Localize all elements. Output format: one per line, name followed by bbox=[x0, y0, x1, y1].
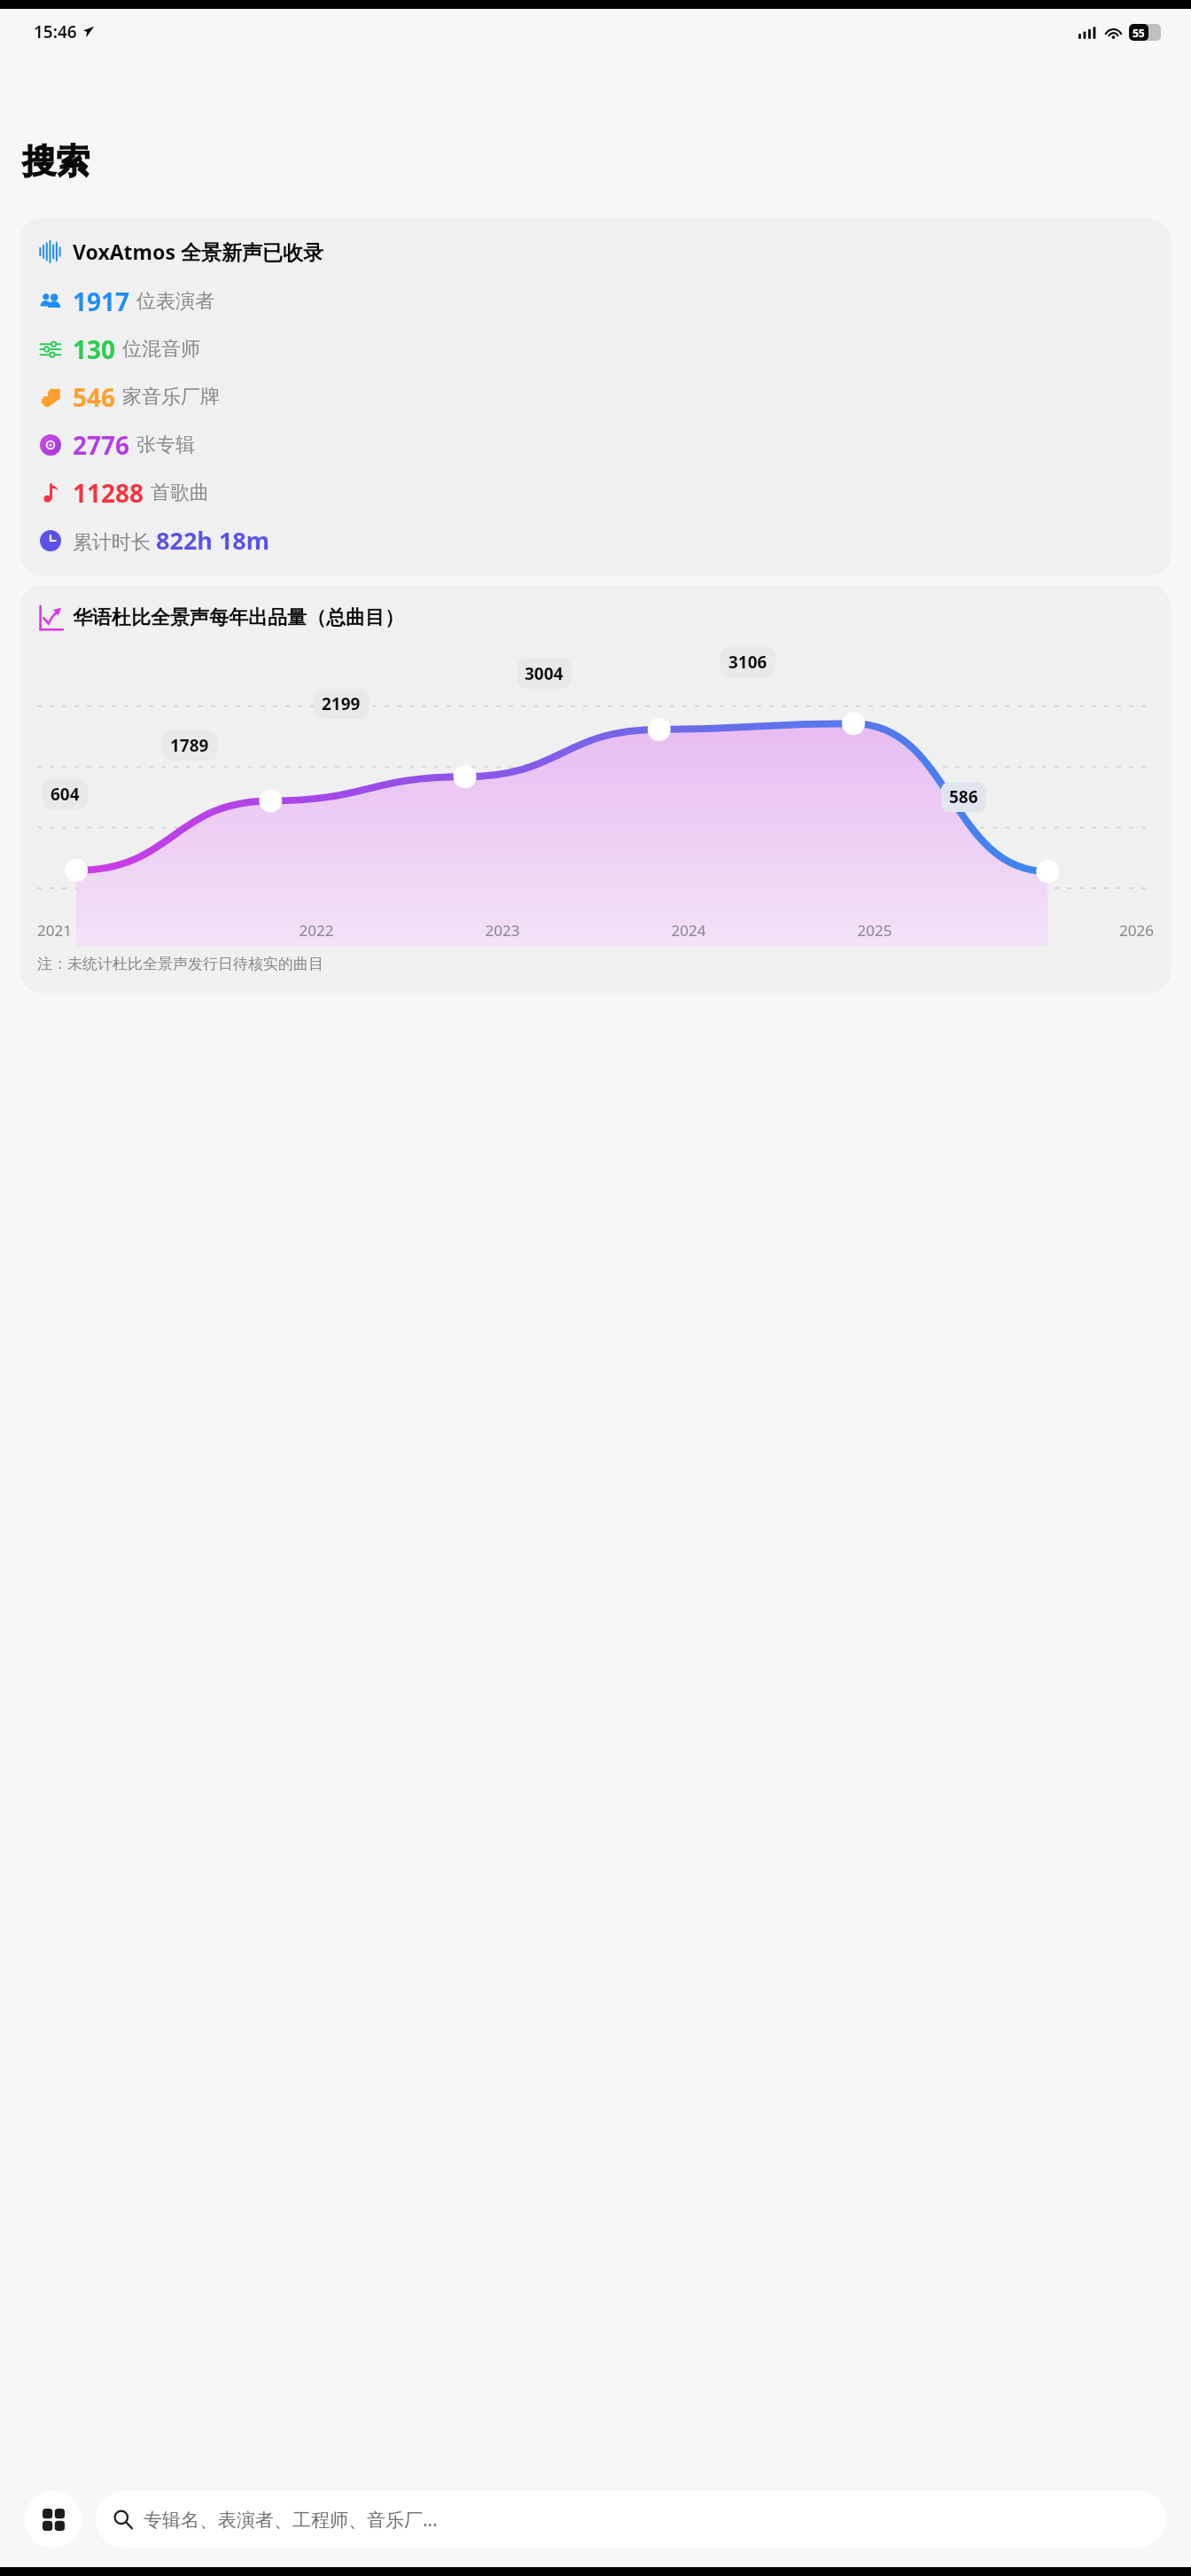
staticText: 位表演者 bbox=[136, 289, 214, 314]
button[interactable]: Grid view bbox=[25, 2491, 82, 2548]
button[interactable]: VoxAtmos 全景新声已收录 bbox=[19, 218, 1172, 576]
button[interactable]: 专辑名、表演者、工程师、音乐厂… bbox=[96, 2491, 1166, 2548]
staticText: 586 bbox=[949, 785, 978, 808]
staticText: 2022 bbox=[223, 920, 409, 941]
staticText: 55 bbox=[1133, 26, 1145, 40]
staticText: 首歌曲 bbox=[151, 480, 209, 505]
staticText: 家音乐厂牌 bbox=[122, 385, 220, 410]
button[interactable]: 华语杜比全景声每年出品量（总曲目） bbox=[19, 585, 1172, 993]
staticText: 1789 bbox=[170, 734, 209, 757]
staticText: 张专辑 bbox=[136, 433, 195, 457]
staticText: 搜索 bbox=[22, 140, 90, 183]
staticText: 3106 bbox=[728, 651, 767, 674]
staticText: 2025 bbox=[782, 920, 968, 941]
staticText: 3004 bbox=[525, 662, 564, 685]
staticText: 130 bbox=[73, 332, 116, 366]
staticText: 11288 bbox=[73, 476, 144, 510]
staticText: 专辑名、表演者、工程师、音乐厂… bbox=[144, 2507, 438, 2533]
staticText: 604 bbox=[51, 783, 80, 806]
staticText: 546 bbox=[73, 380, 116, 414]
staticText: 15:46 bbox=[34, 20, 77, 43]
staticText: 2776 bbox=[73, 428, 130, 462]
staticText: 1917 bbox=[73, 285, 130, 318]
staticText: 2023 bbox=[409, 920, 595, 941]
staticText: 2024 bbox=[595, 920, 782, 941]
staticText: 2199 bbox=[322, 692, 361, 715]
staticText: 注：未统计杜比全景声发行日待核实的曲目 bbox=[37, 955, 323, 973]
staticText: 2021 bbox=[37, 920, 223, 941]
staticText: 位混音师 bbox=[122, 337, 200, 362]
staticText: 华语杜比全景声每年出品量（总曲目） bbox=[73, 605, 404, 630]
staticText: 822h 18m bbox=[156, 524, 270, 557]
staticText: 2026 bbox=[968, 920, 1154, 941]
staticText: 累计时长 bbox=[73, 527, 156, 554]
staticText: VoxAtmos 全景新声已收录 bbox=[73, 238, 323, 265]
